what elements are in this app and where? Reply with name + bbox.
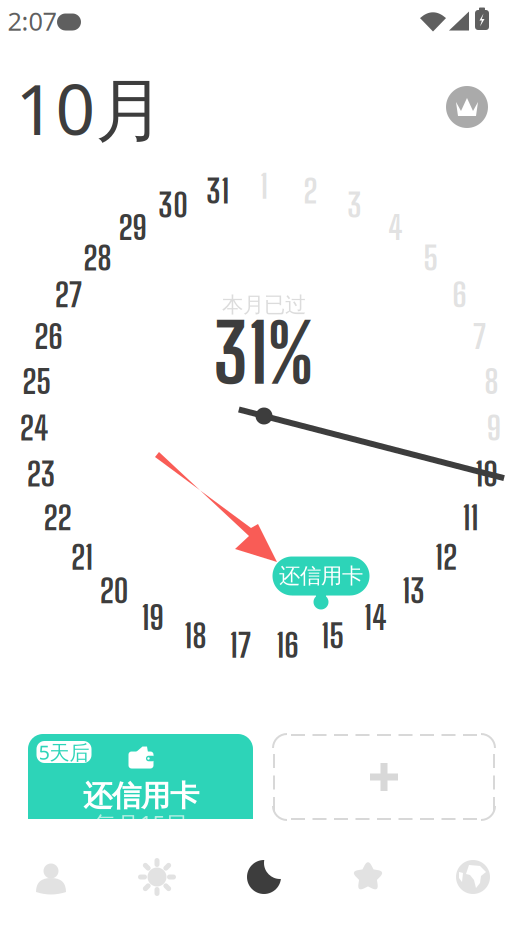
staticText: 10月 [15, 62, 164, 154]
staticText: 9 [487, 408, 501, 448]
staticText: 31% [213, 305, 314, 401]
staticText: 24 [20, 408, 49, 448]
staticText: 25 [22, 361, 51, 401]
button[interactable]: Add reminder [273, 734, 495, 820]
staticText: 本月已过 [222, 292, 306, 318]
staticText: 10 [475, 454, 498, 494]
button[interactable]: Profile [0, 834, 103, 920]
staticText: 23 [27, 454, 56, 494]
staticText: 20 [100, 571, 129, 610]
button[interactable]: Night [212, 834, 316, 920]
staticText: 还信用卡 [83, 778, 199, 814]
staticText: 26 [34, 316, 62, 356]
staticText: 15 [321, 615, 344, 655]
staticText: 每月15日 [93, 809, 188, 839]
button[interactable]: Premium [446, 86, 488, 128]
staticText: 1 [260, 166, 268, 206]
staticText: 5 [423, 238, 438, 277]
staticText: 16 [276, 625, 298, 665]
button[interactable]: 5天后 [28, 734, 253, 850]
staticText: 6 [452, 274, 466, 314]
staticText: 17 [230, 625, 252, 665]
button[interactable]: Day [105, 834, 209, 920]
button[interactable]: Favorites [316, 834, 420, 920]
staticText: 8 [484, 361, 498, 401]
staticText: 2:07 [7, 4, 56, 38]
staticText: 30 [158, 185, 188, 225]
staticText: 18 [184, 615, 206, 655]
staticText: 27 [55, 274, 83, 314]
staticText: 21 [71, 537, 93, 577]
staticText: 29 [119, 207, 147, 247]
staticText: 22 [43, 497, 71, 537]
staticText: 13 [402, 571, 425, 610]
staticText: 2 [303, 171, 317, 211]
staticText: 7 [473, 316, 487, 356]
staticText: 还信用卡 [279, 563, 363, 589]
staticText: 14 [364, 597, 387, 637]
staticText: 5天后 [38, 739, 89, 765]
staticText: 11 [462, 497, 478, 537]
staticText: 28 [83, 238, 111, 277]
staticText: 4 [388, 207, 403, 247]
staticText: 12 [435, 537, 457, 577]
staticText: 31 [206, 171, 229, 211]
staticText: 19 [141, 597, 163, 637]
staticText: 3 [347, 185, 362, 225]
button[interactable]: Explore [421, 834, 525, 920]
